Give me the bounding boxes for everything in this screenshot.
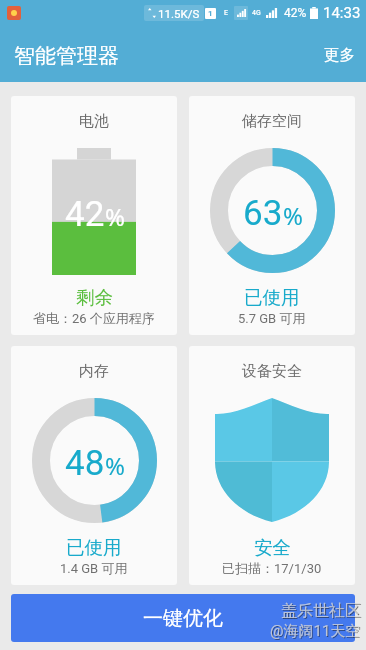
button[interactable]: 更多 <box>312 25 366 82</box>
staticText: % <box>105 449 125 482</box>
staticText: @海阔11天空 <box>271 623 362 642</box>
staticText: 更多 <box>324 45 355 65</box>
staticText: 电池 <box>79 112 109 131</box>
staticText: 1.4 GB 可用 <box>60 560 128 576</box>
staticText: E <box>224 9 228 17</box>
staticText: 剩余 <box>76 286 113 309</box>
button[interactable]: 储存空间 <box>189 96 355 335</box>
staticText: 5.7 GB 可用 <box>238 310 306 326</box>
staticText: 已使用 <box>66 536 122 559</box>
button[interactable]: 电池 <box>11 96 177 335</box>
staticText: 63 <box>243 193 283 234</box>
staticText: 48 <box>65 443 105 484</box>
staticText: 安全 <box>254 536 291 559</box>
staticText: 盖乐世社区 <box>282 602 362 622</box>
staticText: % <box>105 200 125 233</box>
staticText: 内存 <box>79 362 109 381</box>
staticText: 1 <box>208 9 213 18</box>
staticText: 储存空间 <box>242 112 302 131</box>
staticText: 14:33 <box>323 4 361 22</box>
staticText: 盖乐世社区 <box>281 601 361 621</box>
staticText: 智能管理器 <box>14 43 119 69</box>
other: App notification <box>7 6 21 20</box>
staticText: 已使用 <box>244 286 300 309</box>
staticText: % <box>283 199 303 232</box>
staticText: 一键优化 <box>143 606 223 631</box>
button[interactable]: 设备安全 <box>189 346 355 585</box>
staticText: 设备安全 <box>242 362 302 381</box>
staticText: 已扫描：17/1/30 <box>222 560 322 576</box>
staticText: 11.5K/S <box>158 7 200 20</box>
staticText: 42% <box>284 6 307 20</box>
button[interactable]: 一键优化 <box>11 594 355 642</box>
staticText: 省电：26 个应用程序 <box>33 310 155 326</box>
staticText: 42 <box>65 194 105 235</box>
staticText: 4G <box>252 9 261 17</box>
staticText: @海阔11天空 <box>270 622 361 641</box>
button[interactable]: 内存 <box>11 346 177 585</box>
